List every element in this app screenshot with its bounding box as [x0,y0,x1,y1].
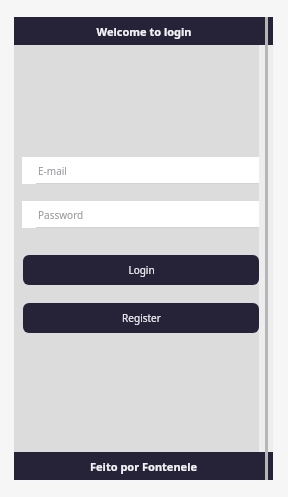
staticText: Welcome to login [96,24,192,39]
button[interactable]: E-mail [22,157,259,184]
staticText: Feito por Fontenele [90,459,197,474]
staticText: Login [128,263,155,277]
button[interactable]: Login [23,255,259,285]
staticText: Register [122,311,161,325]
button[interactable]: Password [22,201,259,228]
button[interactable]: Register [23,303,259,333]
staticText: E-mail [38,164,67,178]
staticText: Password [38,208,84,222]
